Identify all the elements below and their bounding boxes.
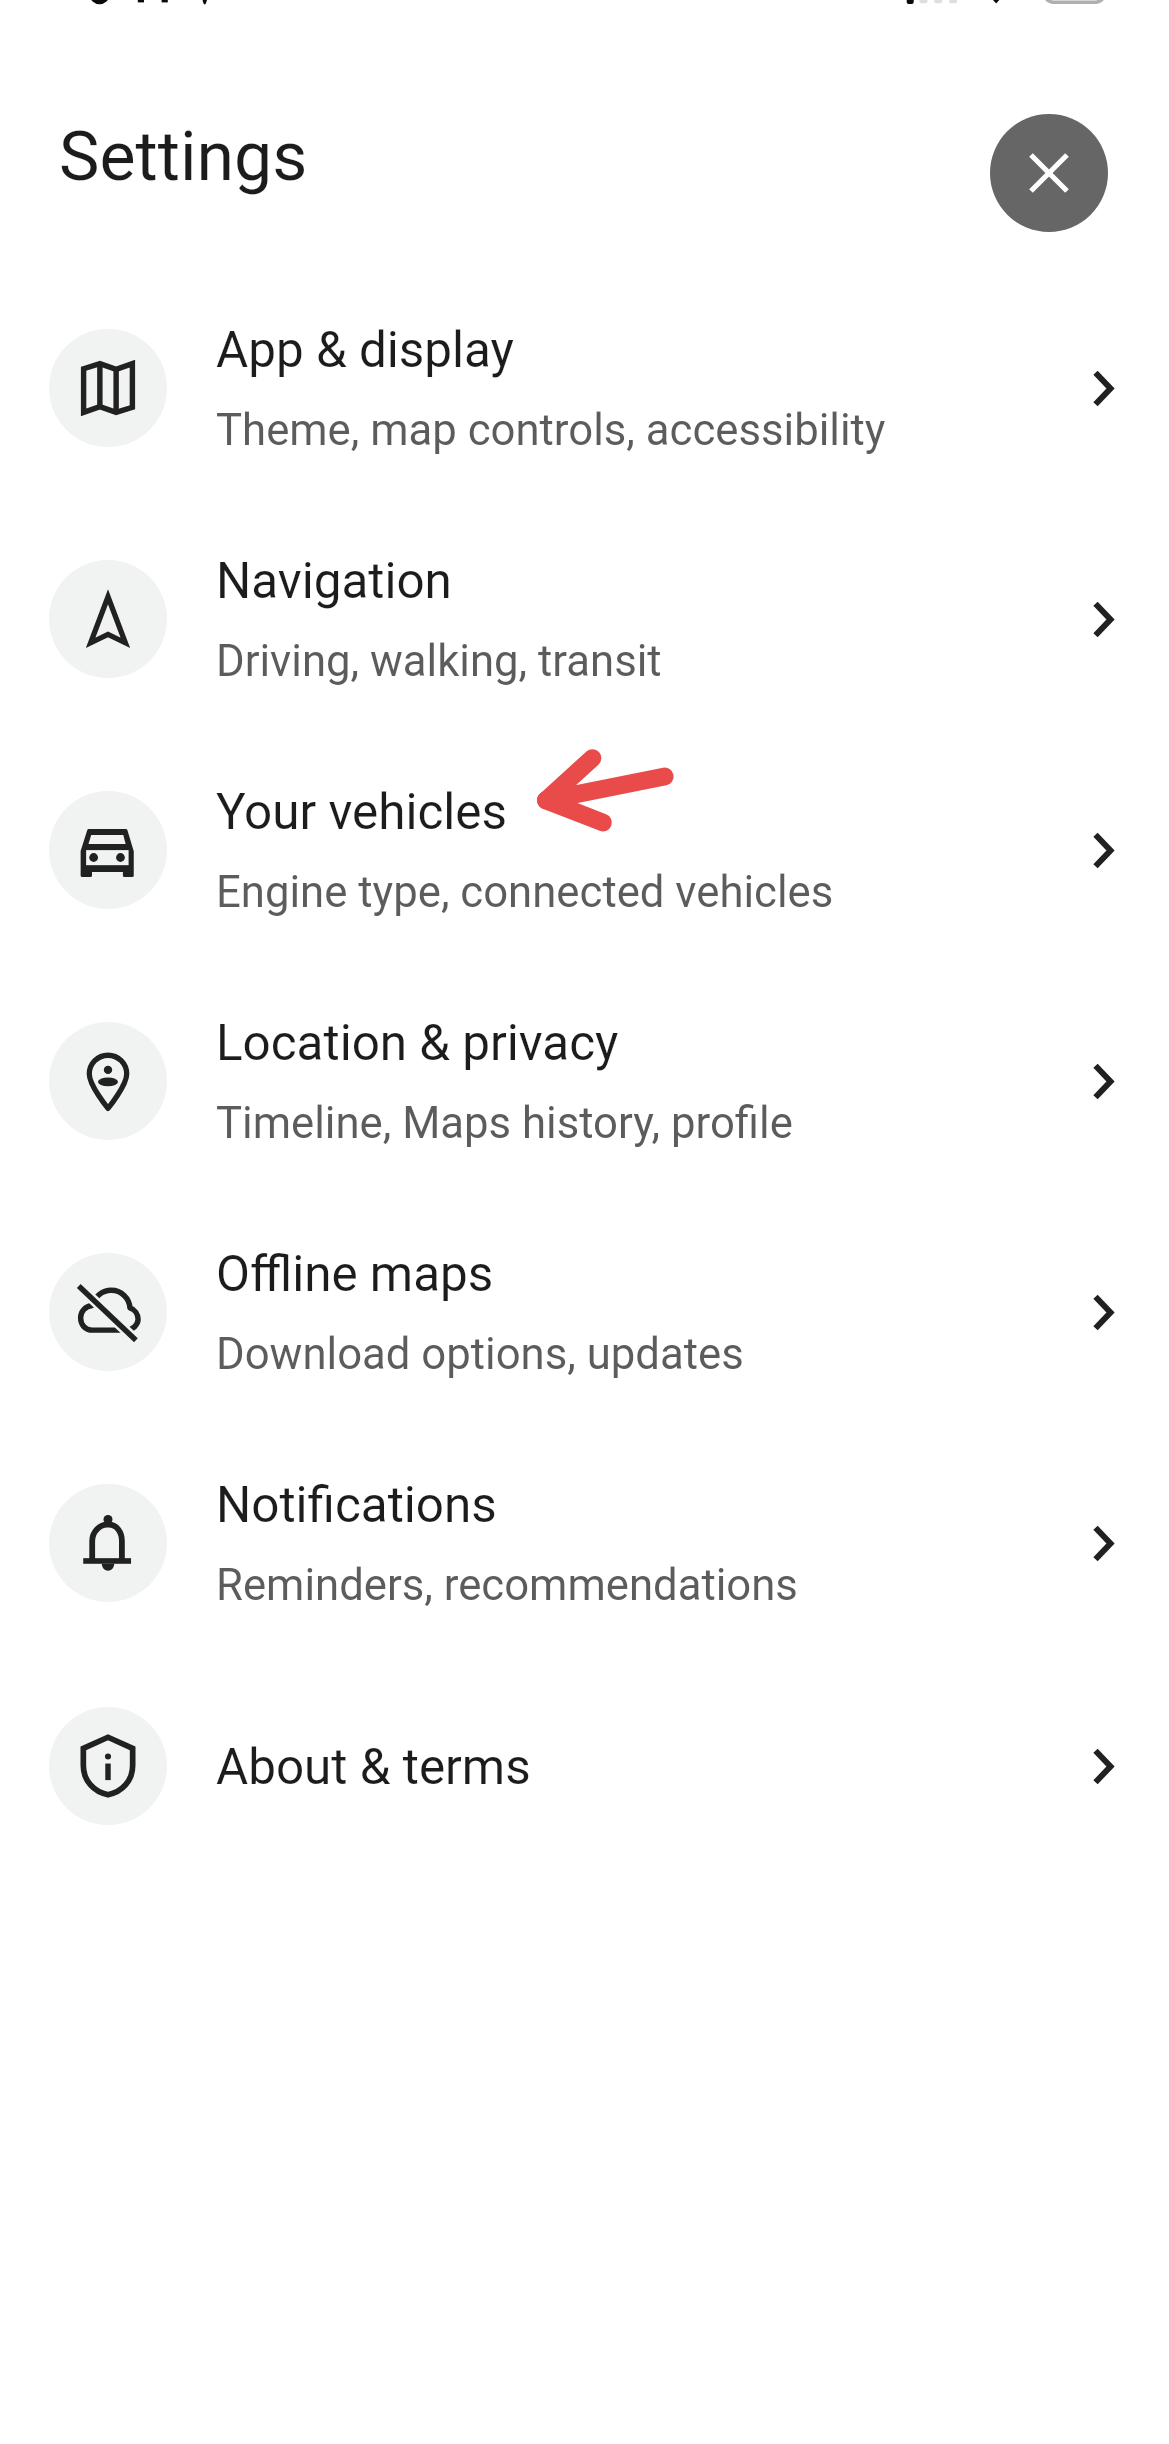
staticText: Location & privacy — [216, 1014, 619, 1072]
button[interactable]: App & display — [0, 273, 1169, 504]
staticText: Notifications — [216, 1476, 497, 1534]
button[interactable]: About & terms — [0, 1651, 1169, 1882]
staticText: About & terms — [216, 1738, 531, 1796]
button[interactable]: Offline maps — [0, 1197, 1169, 1428]
button[interactable]: Close settings — [990, 114, 1108, 232]
staticText: Download options, updates — [216, 1328, 744, 1379]
staticText: Reminders, recommendations — [216, 1559, 798, 1610]
staticText: Offline maps — [216, 1245, 494, 1303]
button[interactable]: Notifications — [0, 1428, 1169, 1659]
staticText: Navigation — [216, 552, 452, 610]
button[interactable]: Location & privacy — [0, 966, 1169, 1197]
staticText: Settings — [59, 117, 308, 197]
staticText: App & display — [216, 321, 514, 379]
staticText: Driving, walking, transit — [216, 635, 662, 686]
staticText: Timeline, Maps history, profile — [216, 1097, 793, 1148]
staticText: Your vehicles — [216, 783, 508, 841]
staticText: Engine type, connected vehicles — [216, 866, 834, 917]
button[interactable]: Navigation — [0, 504, 1169, 735]
button[interactable]: Your vehicles — [0, 735, 1169, 966]
staticText: Theme, map controls, accessibility — [216, 404, 886, 455]
